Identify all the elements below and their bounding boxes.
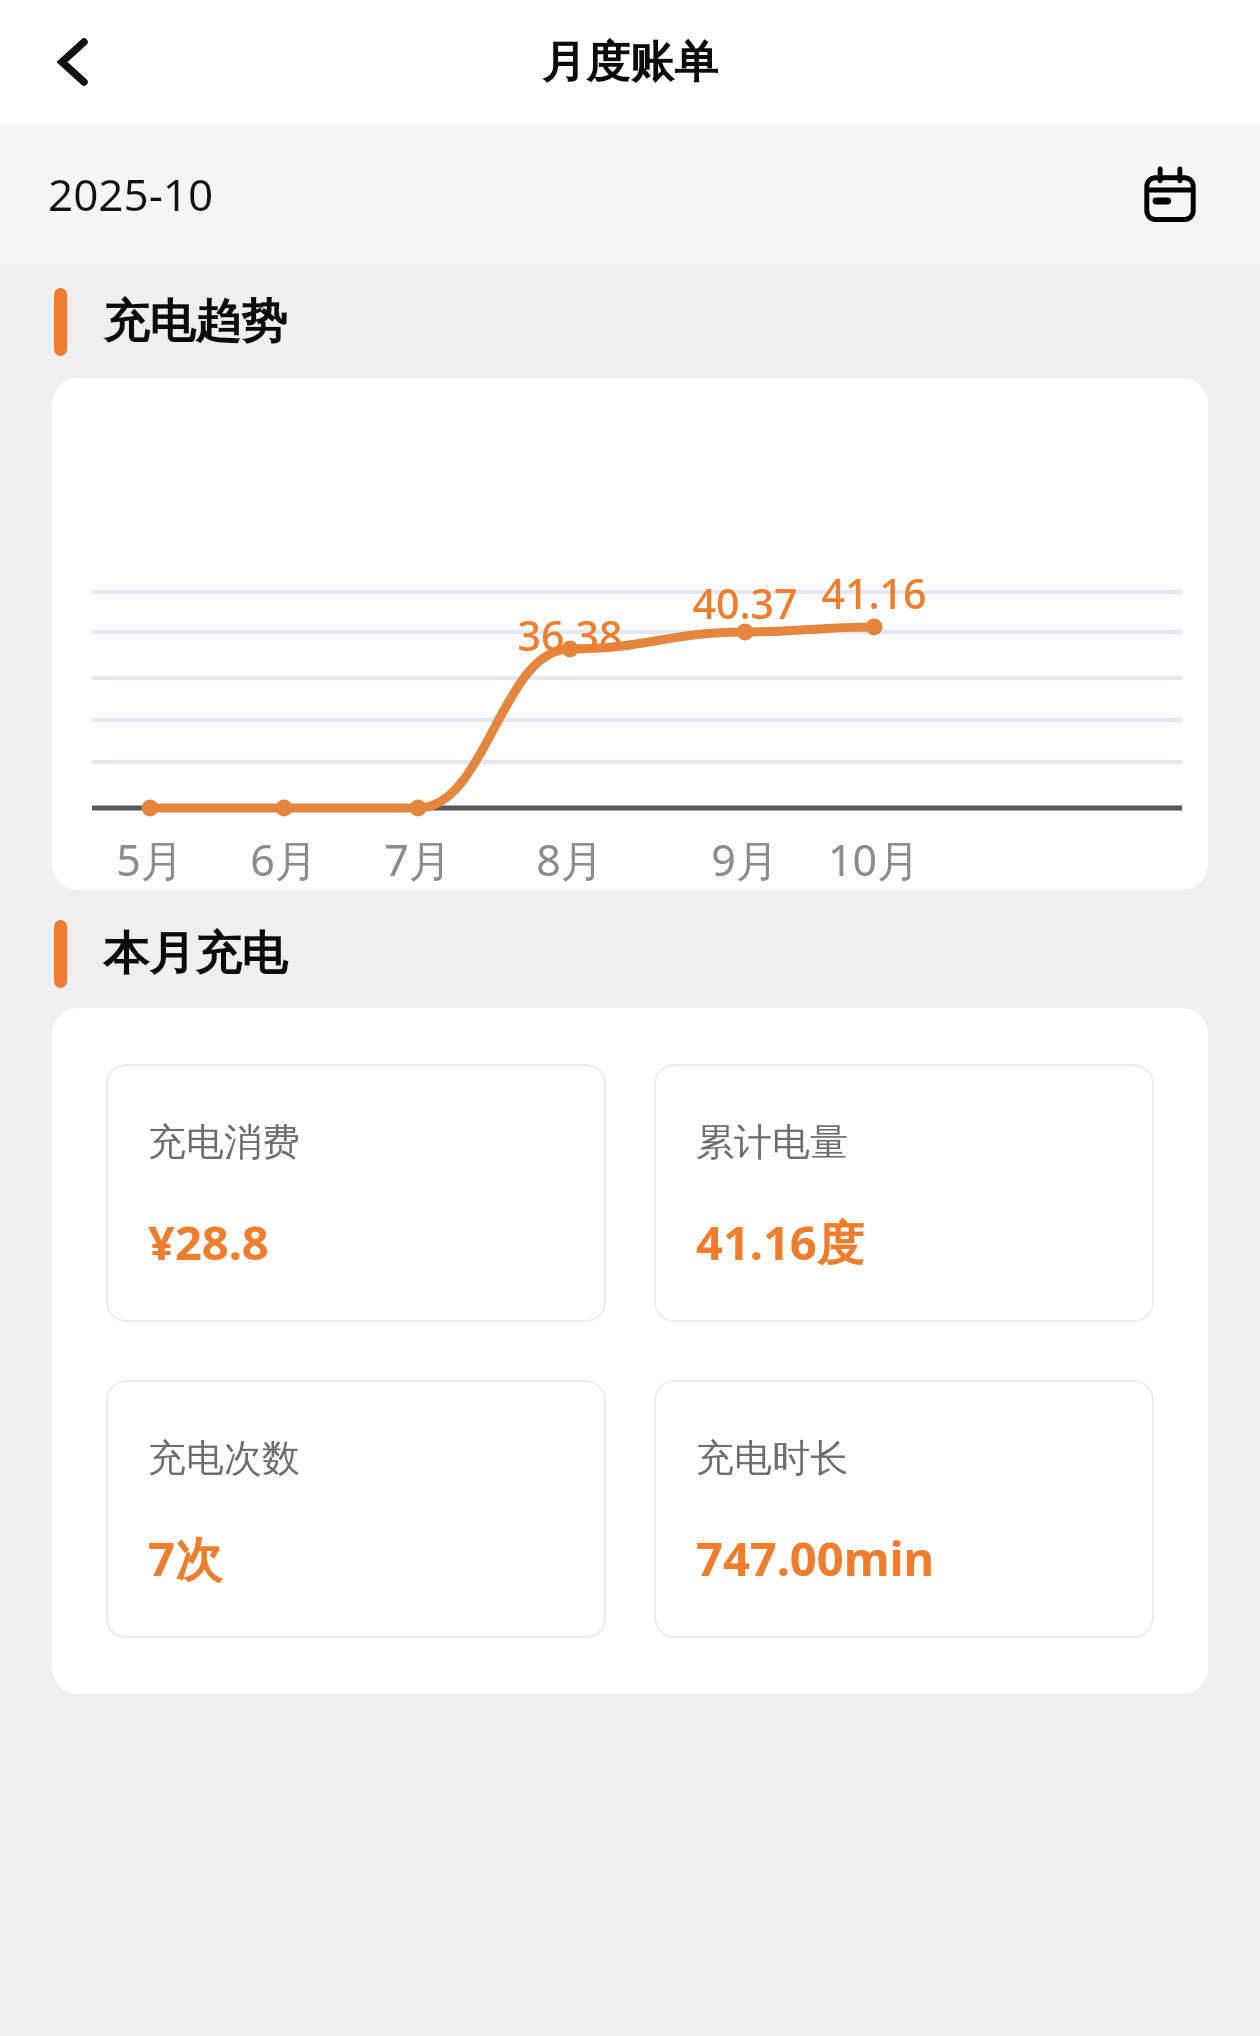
staticText: 7次 (148, 1526, 222, 1590)
staticText: 充电消费 (148, 1118, 300, 1166)
staticText: 月度账单 (542, 35, 718, 90)
staticText: 充电次数 (148, 1434, 300, 1482)
staticText: 充电趋势 (103, 293, 287, 351)
button[interactable]: 选择月份 (1128, 152, 1212, 236)
button[interactable]: 返回 (30, 18, 118, 106)
button[interactable]: 累计电量 (654, 1064, 1154, 1322)
staticText: 8月 (470, 830, 670, 889)
staticText: 747.00min (696, 1526, 935, 1590)
staticText: ¥28.8 (148, 1210, 269, 1274)
staticText: 本月充电 (103, 925, 287, 983)
staticText: 累计电量 (696, 1118, 848, 1166)
button[interactable]: 充电时长 (654, 1380, 1154, 1638)
staticText: 9月 (645, 830, 845, 889)
staticText: 6月 (184, 830, 384, 889)
staticText: 36.38 (470, 607, 670, 663)
staticText: 41.16 (774, 565, 974, 621)
staticText: 充电时长 (696, 1434, 848, 1482)
button[interactable]: 充电消费 (106, 1064, 606, 1322)
staticText: 40.37 (645, 575, 845, 631)
staticText: 41.16度 (696, 1210, 864, 1274)
staticText: 2025-10 (48, 164, 214, 224)
staticText: 7月 (318, 830, 518, 889)
button[interactable]: 充电次数 (106, 1380, 606, 1638)
staticText: 5月 (52, 830, 250, 889)
staticText: 10月 (774, 830, 974, 889)
